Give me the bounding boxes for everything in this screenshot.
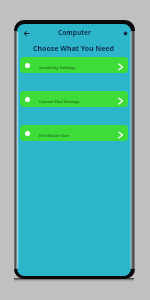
staticText: Computer xyxy=(58,28,91,37)
staticText: Sensitivity Settings xyxy=(39,65,76,70)
button[interactable]: Favorite xyxy=(112,24,131,40)
button[interactable]: Sensitivity Settings xyxy=(20,57,128,73)
button[interactable]: Fire Button Size xyxy=(20,125,128,141)
staticText: Choose What You Need xyxy=(33,44,114,54)
button[interactable]: Back xyxy=(17,24,36,40)
staticText: Fire Button Size xyxy=(39,133,69,138)
staticText: Custom Hud Settings xyxy=(39,99,80,104)
button[interactable]: Custom Hud Settings xyxy=(20,91,128,107)
